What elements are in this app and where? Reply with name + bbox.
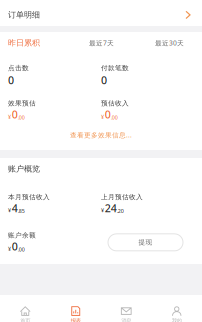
staticText: 消息 bbox=[121, 317, 131, 322]
staticText: 账户余额 bbox=[8, 231, 36, 239]
staticText: 预估收入 bbox=[101, 99, 129, 107]
button[interactable]: 订单明细 bbox=[0, 0, 202, 26]
staticText: 0 bbox=[12, 107, 18, 122]
button[interactable]: 我的 bbox=[151, 295, 202, 322]
staticText: ¥ bbox=[101, 207, 104, 214]
staticText: 首页 bbox=[20, 317, 30, 322]
staticText: 效果预估 bbox=[8, 99, 36, 107]
staticText: 昨日累积 bbox=[8, 38, 40, 48]
staticText: 查看更多效果信息... bbox=[70, 130, 132, 139]
staticText: 本月预估收入 bbox=[8, 193, 50, 201]
staticText: 24 bbox=[105, 201, 117, 215]
staticText: 最近7天 bbox=[89, 38, 114, 47]
staticText: ¥ bbox=[101, 113, 104, 120]
staticText: 最近30天 bbox=[155, 38, 184, 47]
staticText: .00 bbox=[111, 114, 118, 121]
button[interactable]: 最近7天 bbox=[89, 38, 114, 47]
staticText: .85 bbox=[18, 207, 25, 215]
staticText: 付款笔数 bbox=[101, 64, 129, 72]
button[interactable]: 提现 bbox=[108, 234, 183, 251]
staticText: 我的 bbox=[172, 317, 182, 322]
staticText: .20 bbox=[117, 207, 124, 215]
staticText: 点击数 bbox=[8, 64, 29, 72]
staticText: ¥ bbox=[8, 113, 11, 120]
staticText: 报表 bbox=[71, 317, 81, 322]
staticText: 0 bbox=[8, 73, 14, 87]
staticText: 0 bbox=[105, 107, 111, 122]
staticText: 0 bbox=[101, 73, 107, 87]
button[interactable]: 最近30天 bbox=[155, 38, 184, 47]
staticText: ¥ bbox=[8, 245, 11, 252]
staticText: 4 bbox=[12, 201, 18, 215]
button[interactable]: 查看更多效果信息... bbox=[0, 128, 202, 141]
staticText: 0 bbox=[12, 239, 18, 254]
button[interactable]: 首页 bbox=[0, 295, 50, 322]
staticText: 上月预估收入 bbox=[101, 193, 143, 201]
staticText: 提现 bbox=[138, 238, 152, 246]
staticText: .00 bbox=[18, 114, 25, 121]
staticText: 订单明细 bbox=[8, 10, 40, 20]
button[interactable]: 报表 bbox=[50, 295, 101, 322]
button[interactable]: 消息 bbox=[101, 295, 151, 322]
staticText: 账户概览 bbox=[8, 164, 40, 174]
staticText: ¥ bbox=[8, 207, 11, 214]
staticText: .00 bbox=[18, 246, 25, 253]
